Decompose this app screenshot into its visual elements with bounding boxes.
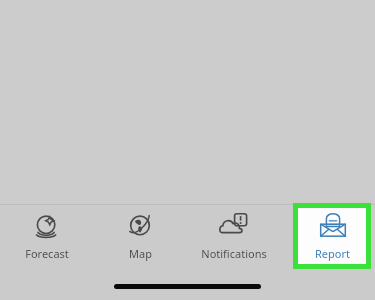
button[interactable]: Notifications (187, 205, 281, 271)
button[interactable]: Report (298, 208, 366, 264)
button[interactable]: Forecast (0, 205, 93, 271)
button[interactable]: Report (281, 205, 375, 271)
other: Forecast (32, 211, 62, 241)
other: Map (125, 211, 155, 241)
staticText: Report (311, 246, 346, 261)
other: Notifications (219, 211, 249, 241)
staticText: Report (315, 246, 350, 261)
staticText: Notifications (201, 246, 267, 261)
staticText: Map (129, 246, 152, 261)
button[interactable]: Map (93, 205, 187, 271)
other: Report (313, 211, 343, 241)
staticText: Forecast (25, 246, 69, 261)
